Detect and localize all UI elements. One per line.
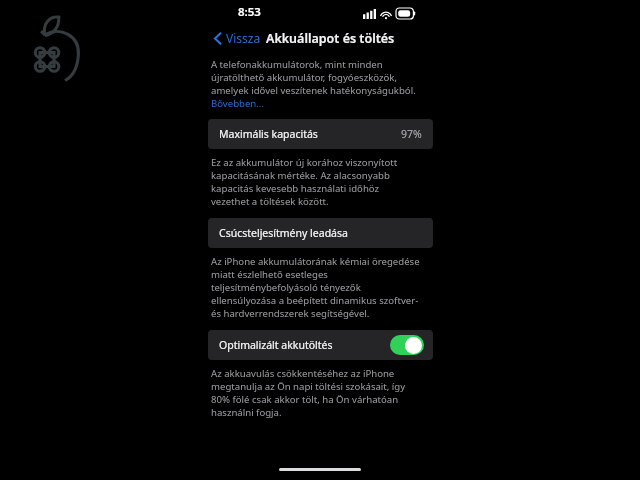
button[interactable]: Csúcsteljesítmény leadása [208, 218, 433, 248]
button[interactable]: Bővebben... [211, 97, 264, 110]
staticText: 8:53 [238, 4, 261, 20]
staticText: Csúcsteljesítmény leadása [219, 226, 348, 240]
button[interactable]: Optimalizált akkutöltés [208, 330, 433, 360]
staticText: Az akkuavulás csökkentéséhez az iPhone m… [211, 367, 436, 419]
button[interactable]: Optimalizált akkutöltés kapcsoló [390, 335, 424, 355]
staticText: Ez az akkumulátor új korához viszonyítot… [211, 156, 436, 208]
button[interactable]: Maximális kapacitás [208, 119, 433, 149]
staticText: Vissza [226, 30, 261, 46]
button[interactable]: Vissza [211, 28, 264, 48]
staticText: 97% [401, 127, 422, 141]
staticText: Bővebben... [211, 97, 264, 110]
staticText: Maximális kapacitás [219, 127, 318, 141]
staticText: Akkuállapot és töltés [266, 30, 395, 47]
staticText: Az iPhone akkumulátorának kémiai öregedé… [211, 255, 436, 320]
staticText: A telefonakkumulátorok, mint minden újra… [211, 58, 416, 97]
staticText: Optimalizált akkutöltés [219, 338, 333, 352]
